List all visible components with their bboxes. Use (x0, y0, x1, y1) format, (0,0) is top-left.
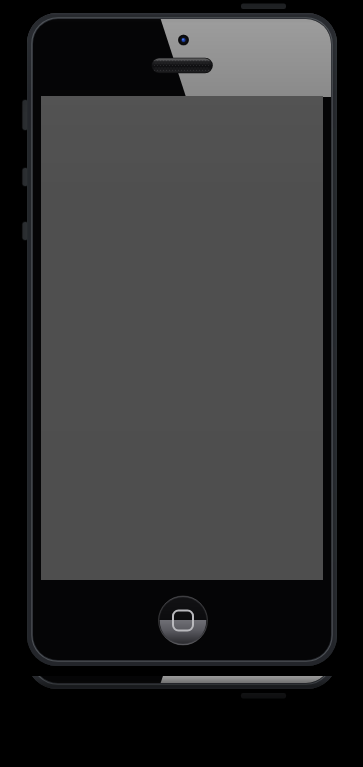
button[interactable]: Phone device mockup (0, 0, 363, 767)
